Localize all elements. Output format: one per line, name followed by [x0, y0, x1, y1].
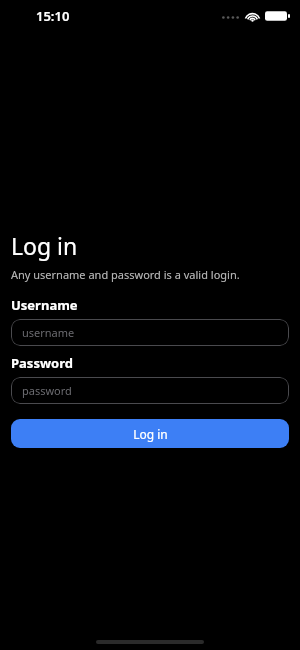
staticText: 15:10: [36, 7, 70, 25]
button[interactable]: username: [11, 319, 289, 346]
staticText: Password: [11, 354, 73, 372]
staticText: password: [22, 383, 72, 398]
button[interactable]: password: [11, 377, 289, 404]
button[interactable]: Log in: [11, 419, 289, 448]
staticText: Log in: [11, 230, 78, 261]
staticText: Any username and password is a valid log…: [11, 267, 240, 282]
staticText: username: [22, 325, 75, 340]
staticText: Log in: [133, 426, 168, 442]
staticText: Username: [11, 296, 78, 314]
